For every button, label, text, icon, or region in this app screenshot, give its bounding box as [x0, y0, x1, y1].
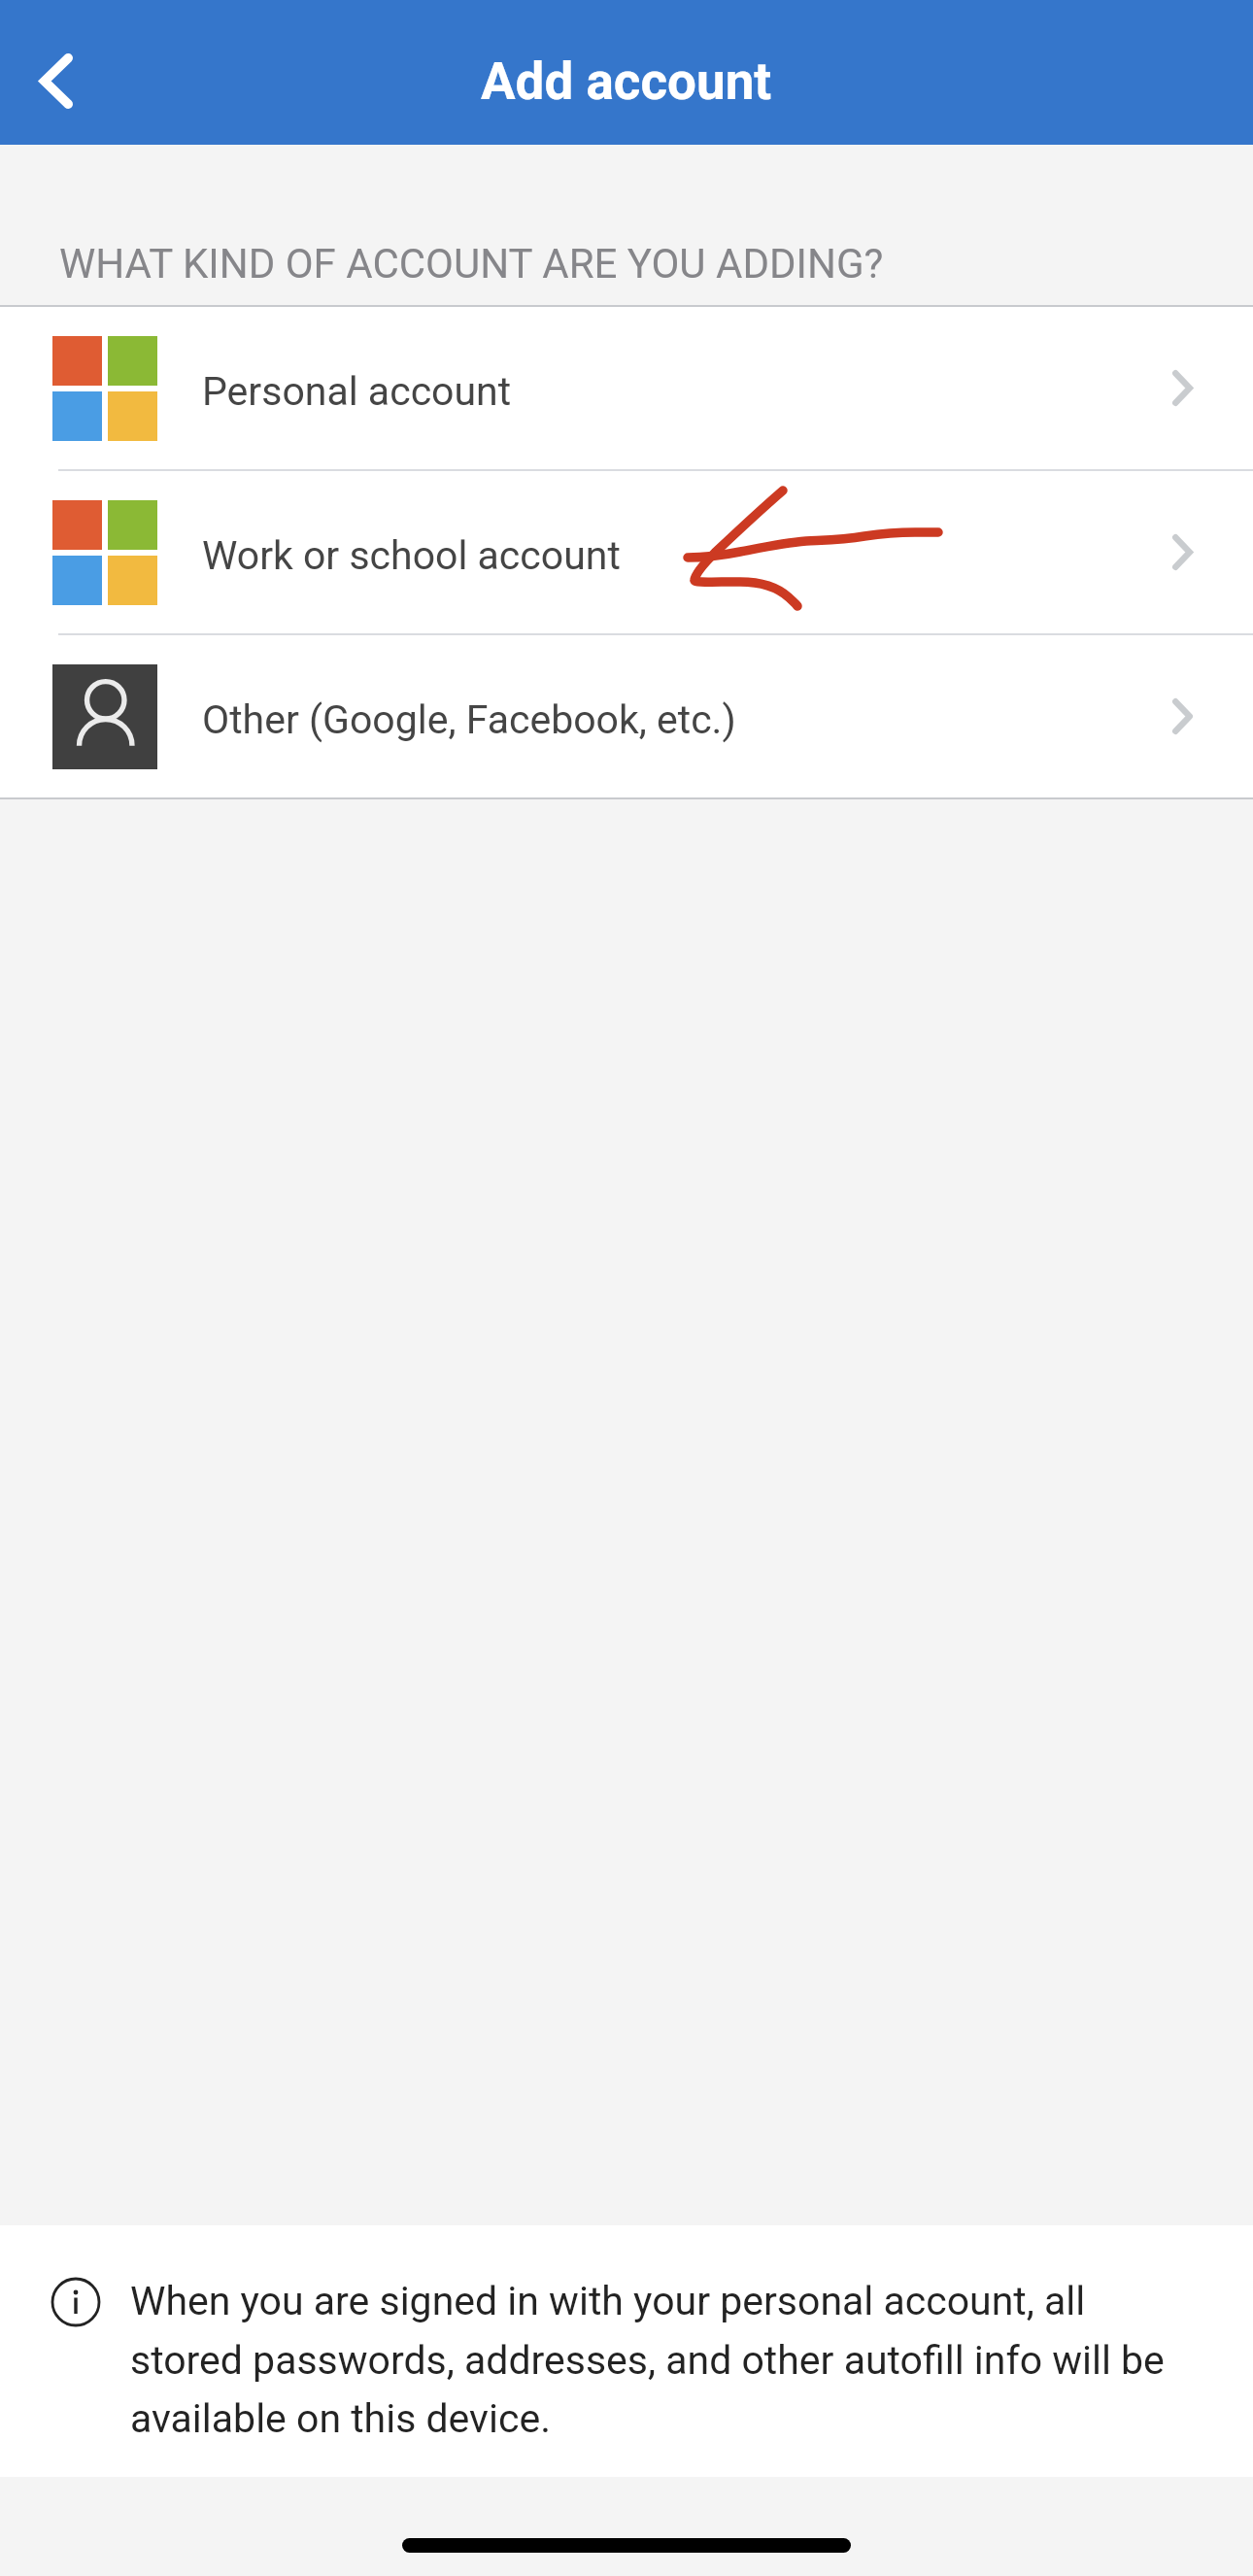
button[interactable]: Back	[2, 16, 117, 130]
staticText: WHAT KIND OF ACCOUNT ARE YOU ADDING?	[59, 240, 884, 288]
button[interactable]: Work or school account	[0, 471, 1253, 633]
staticText: When you are signed in with your persona…	[130, 2278, 1175, 2442]
staticText: Work or school account	[202, 532, 621, 579]
staticText: Add account	[481, 51, 772, 112]
button[interactable]: Other (Google, Facebook, etc.)	[0, 635, 1253, 797]
button[interactable]: Personal account	[0, 307, 1253, 469]
staticText: Personal account	[202, 368, 512, 415]
staticText: Other (Google, Facebook, etc.)	[202, 696, 736, 743]
